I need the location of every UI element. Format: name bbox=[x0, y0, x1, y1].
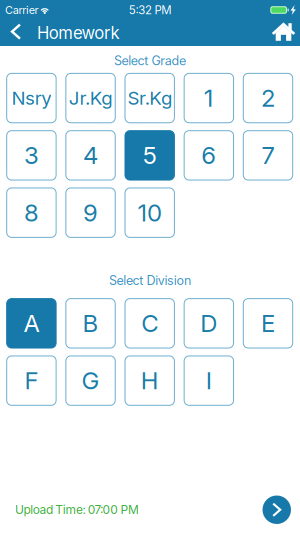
staticText: 1 bbox=[204, 83, 214, 112]
button[interactable]: Next bbox=[262, 495, 291, 524]
button[interactable]: Nsry bbox=[7, 73, 56, 123]
staticText: 10 bbox=[137, 198, 162, 227]
button[interactable]: H bbox=[125, 356, 174, 405]
button[interactable]: 6 bbox=[184, 131, 233, 180]
button[interactable]: 9 bbox=[66, 188, 115, 237]
button[interactable]: A bbox=[7, 299, 56, 348]
staticText: 8 bbox=[24, 198, 39, 227]
staticText: Select Grade bbox=[114, 53, 186, 68]
button[interactable]: C bbox=[125, 299, 174, 348]
staticText: B bbox=[82, 309, 98, 338]
staticText: Nsry bbox=[11, 87, 51, 109]
button[interactable]: F bbox=[7, 356, 56, 405]
staticText: 6 bbox=[201, 141, 216, 170]
staticText: Carrier bbox=[5, 3, 38, 17]
staticText: E bbox=[261, 309, 275, 338]
button[interactable]: 2 bbox=[243, 73, 293, 123]
button[interactable]: I bbox=[184, 356, 233, 405]
staticText: Homework bbox=[37, 23, 120, 43]
staticText: C bbox=[141, 309, 158, 338]
staticText: 9 bbox=[83, 198, 98, 227]
staticText: Select Division bbox=[109, 273, 191, 288]
button[interactable]: G bbox=[66, 356, 115, 405]
staticText: 5:32 PM bbox=[129, 3, 171, 17]
button[interactable]: Jr.Kg bbox=[66, 73, 115, 123]
staticText: G bbox=[81, 366, 99, 395]
staticText: 5 bbox=[143, 141, 157, 170]
button[interactable]: 7 bbox=[243, 131, 293, 180]
staticText: 3 bbox=[24, 141, 39, 170]
staticText: D bbox=[200, 309, 217, 338]
staticText: F bbox=[24, 366, 38, 395]
button[interactable]: E bbox=[243, 299, 293, 348]
staticText: 2 bbox=[261, 83, 275, 112]
button[interactable]: 1 bbox=[184, 73, 233, 123]
button[interactable]: B bbox=[66, 299, 115, 348]
staticText: 4 bbox=[83, 141, 98, 170]
button[interactable]: Back bbox=[5, 20, 27, 46]
staticText: H bbox=[141, 366, 159, 395]
staticText: I bbox=[206, 366, 212, 395]
button[interactable]: Sr.Kg bbox=[125, 73, 174, 123]
button[interactable]: 3 bbox=[7, 131, 56, 180]
staticText: Sr.Kg bbox=[127, 87, 172, 109]
button[interactable]: 4 bbox=[66, 131, 115, 180]
button[interactable]: 5 bbox=[125, 131, 174, 180]
staticText: Upload Time: 07:00 PM bbox=[15, 502, 139, 517]
button[interactable]: Home bbox=[272, 20, 299, 46]
button[interactable]: D bbox=[184, 299, 233, 348]
button[interactable]: 10 bbox=[125, 188, 174, 237]
staticText: A bbox=[23, 309, 39, 338]
staticText: Jr.Kg bbox=[69, 87, 112, 109]
button[interactable]: 8 bbox=[7, 188, 56, 237]
staticText: 7 bbox=[261, 141, 274, 170]
